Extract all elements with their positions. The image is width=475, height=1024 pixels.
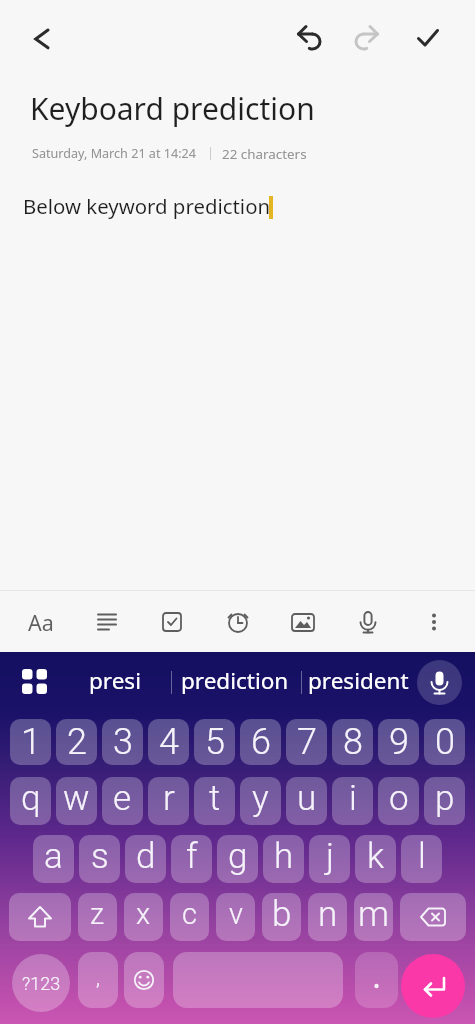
staticText: z: [90, 897, 105, 931]
staticText: w: [63, 778, 90, 819]
staticText: Aa: [28, 608, 54, 637]
staticText: e: [113, 778, 132, 819]
button[interactable]: 7: [286, 719, 327, 765]
staticText: k: [367, 836, 385, 877]
button[interactable]: 3: [102, 719, 143, 765]
button[interactable]: b: [262, 893, 301, 941]
button[interactable]: s: [79, 835, 120, 883]
staticText: h: [274, 836, 294, 877]
staticText: o: [389, 778, 409, 819]
button[interactable]: prediction: [176, 650, 294, 710]
button[interactable]: [355, 952, 398, 1008]
button[interactable]: [400, 893, 466, 941]
button[interactable]: 4: [148, 719, 189, 765]
button[interactable]: [417, 660, 462, 705]
button[interactable]: 1: [10, 719, 51, 765]
button[interactable]: 8: [332, 719, 373, 765]
button[interactable]: [124, 952, 164, 1008]
button[interactable]: presi: [62, 650, 168, 710]
staticText: a: [44, 836, 63, 877]
button[interactable]: [279, 598, 327, 646]
staticText: q: [21, 778, 41, 819]
staticText: d: [136, 836, 156, 877]
button[interactable]: q: [10, 777, 51, 825]
button[interactable]: f: [171, 835, 212, 883]
button[interactable]: l: [401, 835, 442, 883]
button[interactable]: g: [217, 835, 258, 883]
button[interactable]: [401, 954, 465, 1018]
staticText: Keyboard prediction: [30, 88, 315, 129]
button[interactable]: m: [354, 893, 393, 941]
staticText: president: [308, 665, 409, 696]
staticText: 5: [205, 721, 225, 763]
button[interactable]: [214, 598, 262, 646]
button[interactable]: 5: [194, 719, 235, 765]
button[interactable]: x: [124, 893, 163, 941]
button[interactable]: 2: [56, 719, 97, 765]
button[interactable]: [404, 14, 452, 62]
staticText: 22 characters: [222, 145, 307, 163]
button[interactable]: a: [33, 835, 74, 883]
staticText: l: [418, 836, 426, 877]
staticText: 8: [343, 721, 363, 763]
staticText: Below keyword prediction: [23, 192, 271, 220]
staticText: v: [229, 897, 243, 931]
staticText: presi: [89, 665, 141, 696]
staticText: Saturday, March 21 at 14:24: [32, 145, 196, 162]
staticText: 0: [435, 721, 455, 763]
staticText: s: [91, 836, 109, 877]
button[interactable]: r: [148, 777, 189, 825]
button[interactable]: c: [170, 893, 209, 941]
button[interactable]: h: [263, 835, 304, 883]
staticText: prediction: [181, 665, 289, 696]
button[interactable]: [9, 893, 71, 941]
button[interactable]: [344, 598, 392, 646]
button[interactable]: y: [240, 777, 281, 825]
button[interactable]: [410, 598, 458, 646]
button[interactable]: ?123: [12, 954, 70, 1012]
button[interactable]: t: [194, 777, 235, 825]
staticText: 1: [21, 721, 41, 763]
button[interactable]: [173, 952, 343, 1008]
button[interactable]: k: [355, 835, 396, 883]
button[interactable]: o: [378, 777, 419, 825]
button[interactable]: 0: [424, 719, 465, 765]
button[interactable]: [285, 14, 333, 62]
staticText: p: [435, 778, 455, 819]
button[interactable]: e: [102, 777, 143, 825]
staticText: m: [358, 894, 390, 935]
staticText: 2: [67, 721, 87, 763]
button[interactable]: 9: [378, 719, 419, 765]
button[interactable]: [83, 598, 131, 646]
staticText: 6: [251, 721, 271, 763]
staticText: r: [163, 778, 175, 819]
button[interactable]: n: [308, 893, 347, 941]
staticText: 4: [159, 721, 179, 763]
staticText: f: [186, 836, 198, 877]
button[interactable]: president: [303, 650, 413, 710]
staticText: y: [252, 778, 269, 819]
button[interactable]: p: [424, 777, 465, 825]
staticText: i: [349, 778, 357, 819]
button[interactable]: i: [332, 777, 373, 825]
button[interactable]: [148, 598, 196, 646]
button[interactable]: w: [56, 777, 97, 825]
button[interactable]: z: [78, 893, 117, 941]
button[interactable]: u: [286, 777, 327, 825]
staticText: n: [318, 894, 338, 935]
button[interactable]: [343, 14, 391, 62]
button[interactable]: [22, 669, 48, 695]
button[interactable]: [16, 15, 64, 63]
button[interactable]: d: [125, 835, 166, 883]
button[interactable]: 6: [240, 719, 281, 765]
button[interactable]: v: [216, 893, 255, 941]
button[interactable]: j: [309, 835, 350, 883]
staticText: 7: [297, 721, 317, 763]
staticText: b: [272, 894, 292, 935]
button[interactable]: Aa: [17, 598, 65, 646]
staticText: ?123: [22, 973, 61, 994]
staticText: ,: [96, 966, 101, 991]
staticText: j: [326, 836, 334, 877]
button[interactable]: ,: [78, 952, 118, 1008]
staticText: x: [136, 897, 151, 931]
